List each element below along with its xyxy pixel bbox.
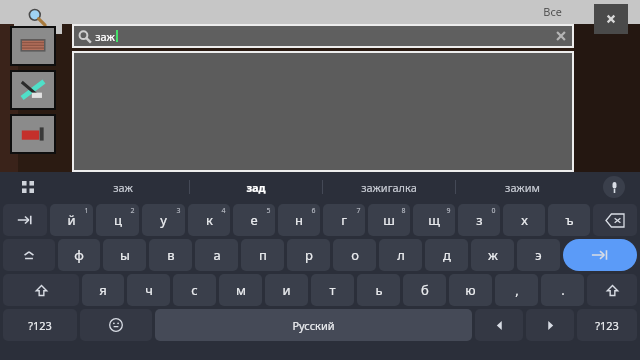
staticText: о (351, 246, 359, 264)
button[interactable]: Caps (3, 239, 55, 271)
button[interactable]: Category 0 (12, 28, 54, 64)
staticText: р (305, 246, 313, 264)
staticText: ю (465, 281, 476, 299)
button[interactable]: д (425, 239, 468, 271)
button[interactable]: Русский (155, 309, 472, 341)
button[interactable]: б (403, 274, 446, 306)
staticText: х (521, 211, 528, 229)
staticText: э (535, 246, 542, 264)
button[interactable]: у (142, 204, 185, 236)
button[interactable]: я (82, 274, 124, 306)
staticText: ч (145, 281, 153, 299)
button[interactable]: п (241, 239, 284, 271)
staticText: 4 (221, 206, 226, 216)
button[interactable]: ы (103, 239, 146, 271)
staticText: заж (113, 180, 133, 195)
button[interactable]: х (503, 204, 545, 236)
button[interactable]: Shift (587, 274, 637, 306)
button[interactable]: о (333, 239, 376, 271)
button[interactable]: ю (449, 274, 492, 306)
button[interactable]: Все (543, 4, 562, 19)
button[interactable]: ?123 (3, 309, 77, 341)
button[interactable]: зажигалка (323, 172, 455, 202)
staticText: , (515, 281, 519, 299)
staticText: и (282, 281, 291, 299)
button[interactable]: щ (413, 204, 455, 236)
staticText: я (99, 281, 107, 299)
button[interactable]: зажим (456, 172, 588, 202)
button[interactable]: ц (96, 204, 139, 236)
staticText: 6 (311, 206, 316, 216)
button[interactable]: т (311, 274, 354, 306)
button[interactable]: ъ (548, 204, 590, 236)
button[interactable]: Close (594, 4, 628, 34)
staticText: 0 (491, 206, 496, 216)
button[interactable]: с (173, 274, 216, 306)
button[interactable]: к (188, 204, 230, 236)
staticText: а (213, 246, 221, 264)
staticText: ш (383, 211, 395, 229)
button[interactable]: Voice input (588, 172, 640, 202)
staticText: ы (120, 246, 130, 264)
staticText: б (421, 281, 429, 299)
staticText: й (67, 211, 76, 229)
staticText: Русский (292, 318, 335, 333)
button[interactable]: Move left (475, 309, 523, 341)
staticText: щ (428, 211, 440, 229)
staticText: в (167, 246, 175, 264)
button[interactable]: Search tab (14, 0, 62, 34)
button[interactable]: Tab (3, 204, 47, 236)
staticText: е (250, 211, 258, 229)
staticText: 9 (446, 206, 451, 216)
staticText: з (476, 211, 483, 229)
button[interactable]: й (50, 204, 93, 236)
button[interactable]: г (323, 204, 365, 236)
button[interactable]: Move right (526, 309, 574, 341)
staticText: зад (246, 180, 266, 195)
staticText: т (329, 281, 336, 299)
button[interactable]: ?123 (577, 309, 637, 341)
button[interactable]: Menu (0, 172, 56, 202)
button[interactable]: . (541, 274, 584, 306)
button[interactable]: э (517, 239, 560, 271)
button[interactable]: заж (56, 172, 189, 202)
button[interactable]: р (287, 239, 330, 271)
button[interactable]: е (233, 204, 275, 236)
button[interactable]: а (195, 239, 238, 271)
button[interactable]: Backspace (593, 204, 637, 236)
button[interactable]: зад (190, 172, 322, 202)
button[interactable]: Enter (563, 239, 637, 271)
button[interactable]: ш (368, 204, 410, 236)
staticText: . (561, 281, 565, 299)
button[interactable]: и (265, 274, 308, 306)
button[interactable]: з (458, 204, 500, 236)
button[interactable]: Shift (3, 274, 79, 306)
button[interactable]: Category 2 (12, 116, 54, 152)
button[interactable]: м (219, 274, 262, 306)
staticText: 2 (130, 206, 135, 216)
button[interactable]: ь (357, 274, 400, 306)
button[interactable]: Emoji (80, 309, 152, 341)
staticText: у (160, 211, 167, 229)
staticText: д (443, 246, 451, 264)
button[interactable]: л (379, 239, 422, 271)
button[interactable]: , (495, 274, 538, 306)
staticText: н (295, 211, 303, 229)
staticText: 1 (84, 206, 89, 216)
staticText: зажим (505, 180, 540, 195)
staticText: п (259, 246, 267, 264)
button[interactable]: ф (58, 239, 100, 271)
staticText: 7 (356, 206, 361, 216)
button[interactable]: ч (127, 274, 170, 306)
staticText: л (397, 246, 405, 264)
staticText: с (191, 281, 198, 299)
staticText: ф (74, 246, 84, 264)
button[interactable]: в (149, 239, 192, 271)
button[interactable]: заж (74, 26, 572, 46)
button[interactable]: Category 1 (12, 72, 54, 108)
staticText: ь (375, 281, 383, 299)
button[interactable]: н (278, 204, 320, 236)
button[interactable]: ж (471, 239, 514, 271)
staticText: к (206, 211, 213, 229)
button[interactable]: Clear search (554, 29, 568, 43)
